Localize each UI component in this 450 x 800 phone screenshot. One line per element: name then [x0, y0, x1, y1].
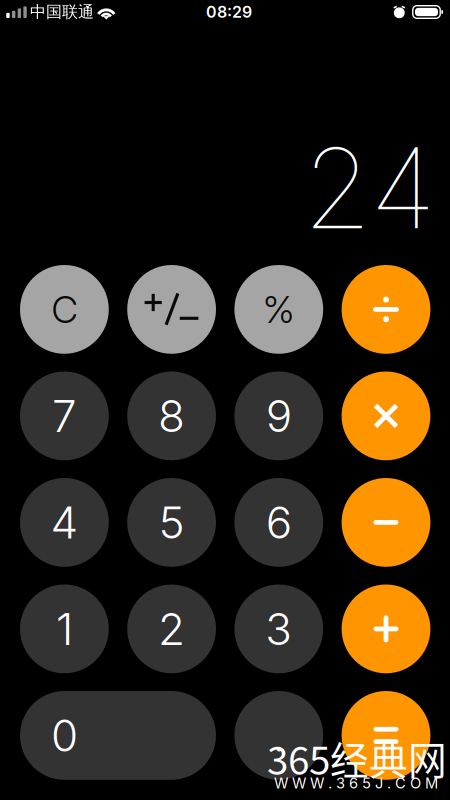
button[interactable]: 6: [234, 478, 323, 567]
staticText: 4: [50, 496, 78, 549]
staticText: .: [273, 709, 285, 762]
staticText: 08:29: [206, 2, 252, 22]
staticText: 24: [303, 121, 436, 255]
button[interactable]: 9: [234, 371, 323, 460]
button[interactable]: 8: [127, 371, 216, 460]
button[interactable]: %: [234, 265, 323, 354]
button[interactable]: 5: [127, 478, 216, 567]
button[interactable]: 0: [20, 691, 216, 780]
staticText: 3: [265, 602, 292, 655]
button[interactable]: 2: [127, 584, 216, 673]
staticText: W W W . 3 6 5 J . C O M: [274, 774, 438, 792]
staticText: C: [51, 287, 77, 332]
staticText: 9: [266, 389, 292, 442]
staticText: 中国联通: [30, 2, 94, 22]
button[interactable]: C: [20, 265, 109, 354]
button[interactable]: Multiply: [342, 371, 430, 460]
button[interactable]: 1: [20, 584, 109, 673]
staticText: 0: [51, 709, 78, 762]
button[interactable]: Equals: [342, 691, 430, 780]
button[interactable]: Plus minus: [127, 265, 216, 354]
button[interactable]: 4: [20, 478, 109, 567]
staticText: 7: [52, 389, 77, 442]
staticText: %: [263, 287, 295, 332]
staticText: 5: [159, 496, 185, 549]
button[interactable]: 7: [20, 371, 109, 460]
staticText: 1: [56, 602, 73, 655]
staticText: 2: [158, 602, 185, 655]
button[interactable]: Divide: [342, 265, 430, 354]
button[interactable]: Plus: [342, 584, 430, 673]
button[interactable]: .: [234, 691, 323, 780]
staticText: 365经典网: [267, 730, 447, 786]
staticText: 8: [158, 389, 185, 442]
staticText: 6: [266, 496, 292, 549]
button[interactable]: Minus: [342, 478, 430, 567]
button[interactable]: 3: [234, 584, 323, 673]
